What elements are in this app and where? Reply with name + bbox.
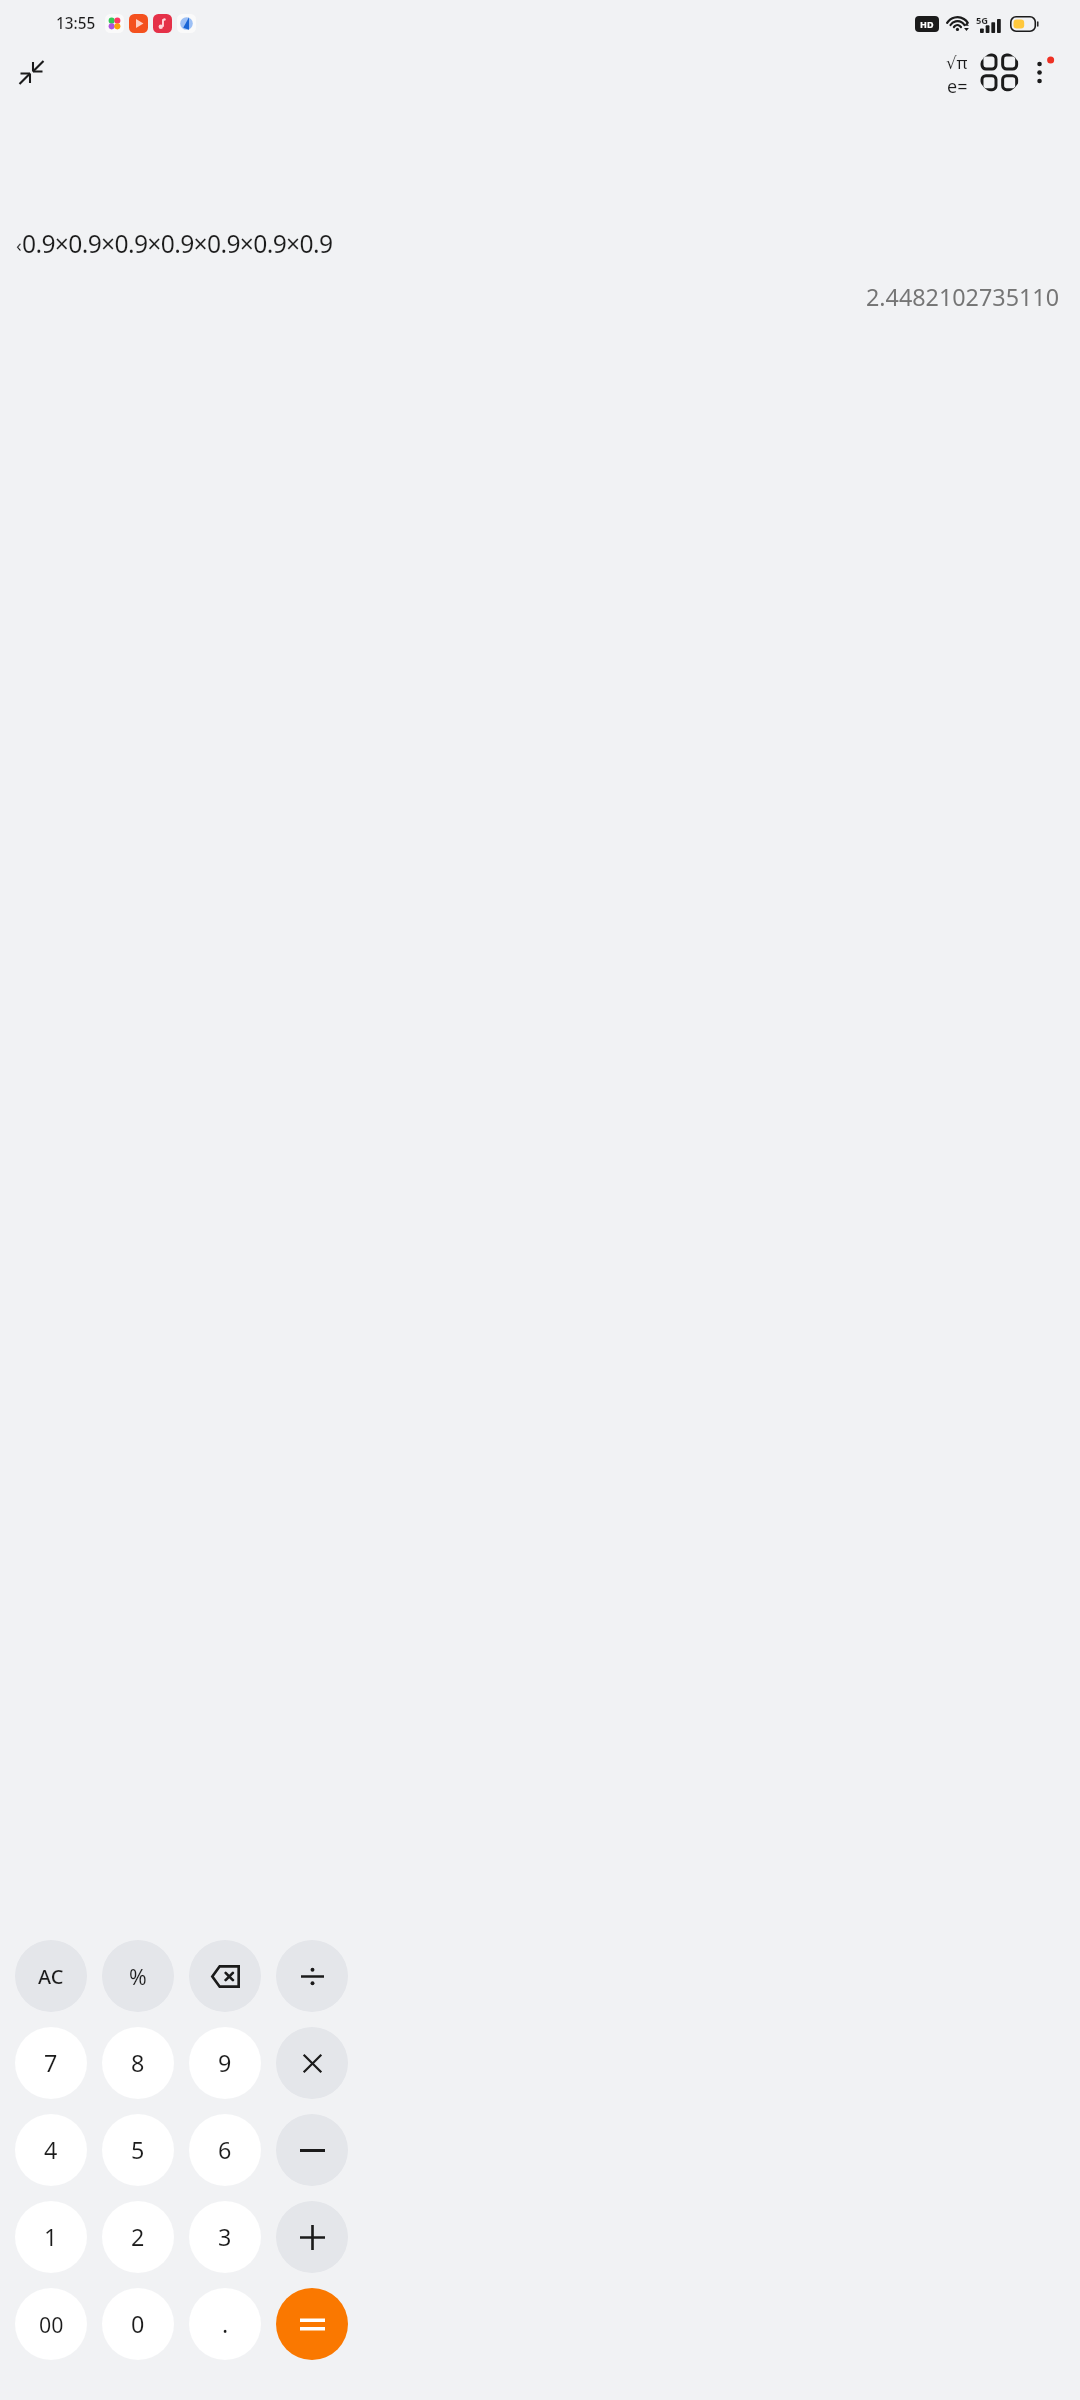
- staticText: 00: [39, 2310, 64, 2339]
- button[interactable]: %: [102, 1940, 174, 2012]
- staticText: 2.4482102735110: [0, 281, 1059, 313]
- button[interactable]: 1: [15, 2201, 87, 2273]
- staticText: 3: [218, 2221, 232, 2253]
- button[interactable]: Scientific mode: [935, 51, 978, 94]
- button[interactable]: 00: [15, 2288, 87, 2360]
- staticText: 13:55: [56, 13, 96, 34]
- button[interactable]: Minus: [276, 2114, 348, 2186]
- staticText: %: [129, 1962, 147, 1991]
- staticText: 5G: [976, 14, 989, 27]
- button[interactable]: Backspace: [189, 1940, 261, 2012]
- button[interactable]: Equals: [276, 2288, 348, 2360]
- button[interactable]: Divide: [276, 1940, 348, 2012]
- staticText: ‹: [16, 232, 22, 257]
- staticText: 7: [44, 2047, 58, 2079]
- button[interactable]: 9: [189, 2027, 261, 2099]
- button[interactable]: More options: [1021, 51, 1064, 94]
- staticText: 5: [131, 2134, 145, 2166]
- staticText: 0.9×0.9×0.9×0.9×0.9×0.9×0.9: [22, 227, 333, 261]
- staticText: 1: [44, 2221, 58, 2253]
- button[interactable]: 2: [102, 2201, 174, 2273]
- staticText: .: [222, 2308, 229, 2340]
- button[interactable]: 5: [102, 2114, 174, 2186]
- staticText: 2: [131, 2221, 145, 2253]
- staticText: e=: [947, 74, 968, 94]
- staticText: 8: [131, 2047, 145, 2079]
- button[interactable]: AC: [15, 1940, 87, 2012]
- button[interactable]: 8: [102, 2027, 174, 2099]
- button[interactable]: 7: [15, 2027, 87, 2099]
- button[interactable]: Converter: [978, 51, 1021, 94]
- button[interactable]: 6: [189, 2114, 261, 2186]
- staticText: 9: [218, 2047, 232, 2079]
- staticText: √π: [946, 51, 968, 74]
- staticText: 6: [218, 2134, 232, 2166]
- button[interactable]: .: [189, 2288, 261, 2360]
- button[interactable]: 4: [15, 2114, 87, 2186]
- staticText: HD: [920, 18, 934, 30]
- staticText: 0: [131, 2308, 145, 2340]
- button[interactable]: Plus: [276, 2201, 348, 2273]
- staticText: 4: [44, 2134, 58, 2166]
- staticText: AC: [38, 1963, 64, 1990]
- button[interactable]: 0: [102, 2288, 174, 2360]
- button[interactable]: Collapse: [11, 52, 51, 92]
- button[interactable]: 3: [189, 2201, 261, 2273]
- button[interactable]: Multiply: [276, 2027, 348, 2099]
